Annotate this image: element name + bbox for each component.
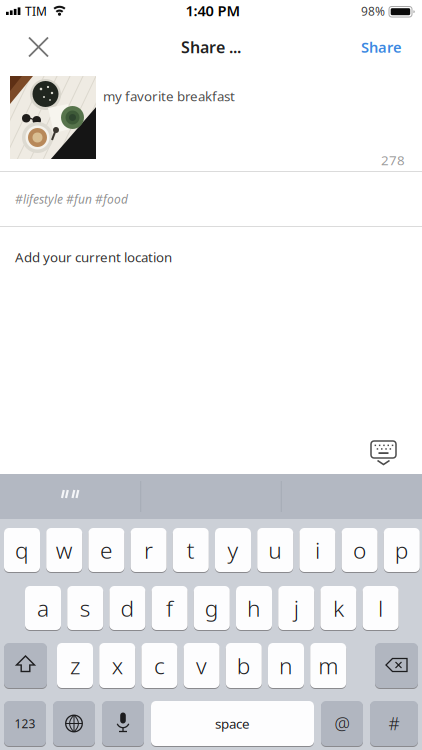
button[interactable]: d [109,586,145,631]
button[interactable]: y [215,528,251,573]
button[interactable]: “” [0,474,140,513]
button[interactable]: w [46,528,82,573]
staticText: x [112,650,123,680]
button[interactable]: x [99,643,135,689]
button[interactable]: 123 [4,701,46,747]
staticText: my favorite breakfast [103,87,235,105]
button[interactable]: a [25,586,61,631]
button[interactable]: n [268,643,304,689]
button[interactable]: @ [321,701,363,747]
button[interactable]: v [184,643,220,689]
button[interactable]: # [370,701,418,747]
button[interactable]: Shift [4,643,47,689]
button[interactable]: space [151,701,314,747]
button[interactable]: u [257,528,293,573]
button[interactable]: z [57,643,93,689]
staticText: s [80,593,91,623]
staticText: a [37,593,49,623]
staticText: l [378,593,383,623]
staticText: z [70,650,80,680]
staticText: #lifestyle #fun #food [15,191,128,207]
button[interactable]: o [342,528,378,573]
staticText: TIM [25,3,47,19]
staticText: 123 [14,715,35,731]
button[interactable]: Share [332,35,402,59]
button[interactable]: Close [23,31,54,62]
staticText: Add your current location [15,248,172,266]
staticText: u [268,535,282,565]
staticText: Share ... [181,36,241,58]
button[interactable]: my favorite breakfast [103,86,393,106]
staticText: i [315,535,320,565]
button[interactable]: j [278,586,314,631]
button[interactable]: f [152,586,188,631]
button[interactable]: Next keyboard [53,701,95,747]
staticText: t [187,535,195,565]
button[interactable]: m [310,643,346,689]
button[interactable]: l [363,586,399,631]
staticText: m [318,650,338,680]
button[interactable]: Dismiss keyboard [370,441,397,466]
button[interactable]: q [4,528,40,573]
button[interactable]: b [226,643,262,689]
staticText: y [227,535,238,565]
button[interactable]: t [173,528,209,573]
staticText: f [166,593,173,623]
staticText: p [395,535,409,565]
staticText: 98% [361,3,385,19]
staticText: q [15,535,29,565]
staticText: 278 [381,151,405,169]
staticText: Share [361,37,402,57]
staticText: b [237,650,251,680]
staticText: w [56,535,73,565]
staticText: c [154,650,165,680]
button[interactable]: r [131,528,167,573]
staticText: r [144,535,153,565]
button[interactable]: Delete [375,643,418,689]
button[interactable]: e [88,528,124,573]
staticText: 1:40 PM [185,1,240,20]
staticText: g [205,593,219,623]
button[interactable]: s [67,586,103,631]
button[interactable]: #lifestyle #fun #food [15,190,315,208]
button[interactable]: k [320,586,356,631]
staticText: v [196,650,207,680]
staticText: d [120,593,134,623]
staticText: o [353,535,366,565]
button[interactable]: i [299,528,335,573]
staticText: k [333,593,344,623]
staticText: @ [334,712,349,735]
staticText: space [215,715,250,732]
staticText: h [247,593,261,623]
staticText: j [294,593,299,623]
button[interactable]: Dictate [102,701,144,747]
button[interactable]: c [141,643,177,689]
button[interactable]: g [194,586,230,631]
staticText: # [388,712,399,735]
staticText: e [100,535,113,565]
button[interactable]: p [384,528,420,573]
button[interactable]: h [236,586,272,631]
button[interactable]: Add your current location [15,247,315,267]
staticText: n [279,650,293,680]
